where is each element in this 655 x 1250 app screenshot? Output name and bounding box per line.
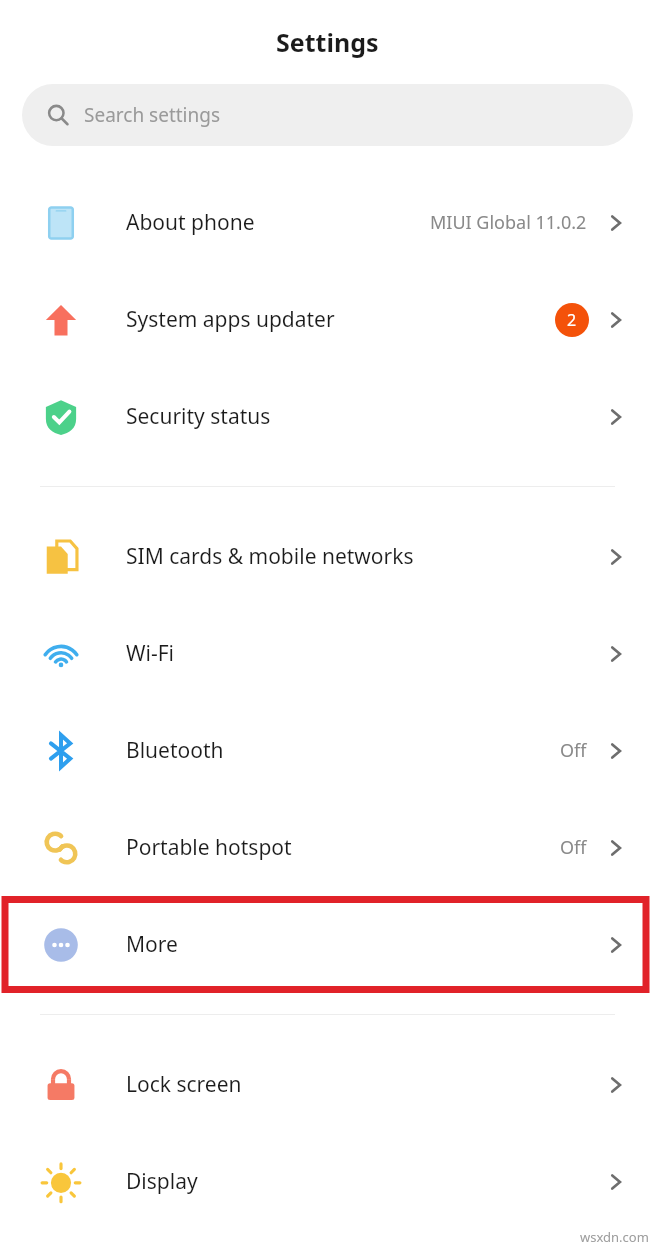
staticText: SIM cards & mobile networks bbox=[126, 542, 414, 571]
button[interactable]: Lock screen bbox=[0, 1036, 655, 1133]
staticText: wsxdn.com bbox=[580, 1228, 649, 1246]
staticText: Settings bbox=[276, 25, 379, 59]
button[interactable]: Wi-Fi bbox=[0, 605, 655, 702]
button[interactable]: Security status bbox=[0, 368, 655, 465]
staticText: Search settings bbox=[84, 102, 221, 128]
staticText: Off bbox=[560, 835, 587, 860]
staticText: Lock screen bbox=[126, 1070, 242, 1099]
staticText: Off bbox=[560, 738, 587, 763]
button[interactable]: Search settings bbox=[22, 84, 633, 146]
staticText: MIUI Global 11.0.2 bbox=[430, 210, 587, 235]
button[interactable]: More bbox=[0, 896, 655, 993]
button[interactable]: System apps updater bbox=[0, 271, 655, 368]
staticText: Portable hotspot bbox=[126, 833, 292, 862]
staticText: System apps updater bbox=[126, 305, 335, 334]
staticText: More bbox=[126, 930, 178, 959]
staticText: About phone bbox=[126, 208, 255, 237]
staticText: 2 bbox=[567, 309, 577, 331]
staticText: Wi-Fi bbox=[126, 639, 175, 668]
staticText: Bluetooth bbox=[126, 736, 224, 765]
button[interactable]: Display bbox=[0, 1133, 655, 1230]
button[interactable]: Bluetooth bbox=[0, 702, 655, 799]
staticText: Display bbox=[126, 1167, 198, 1196]
button[interactable]: Portable hotspot bbox=[0, 799, 655, 896]
button[interactable]: About phone bbox=[0, 174, 655, 271]
button[interactable]: SIM cards & mobile networks bbox=[0, 508, 655, 605]
staticText: Security status bbox=[126, 402, 271, 431]
